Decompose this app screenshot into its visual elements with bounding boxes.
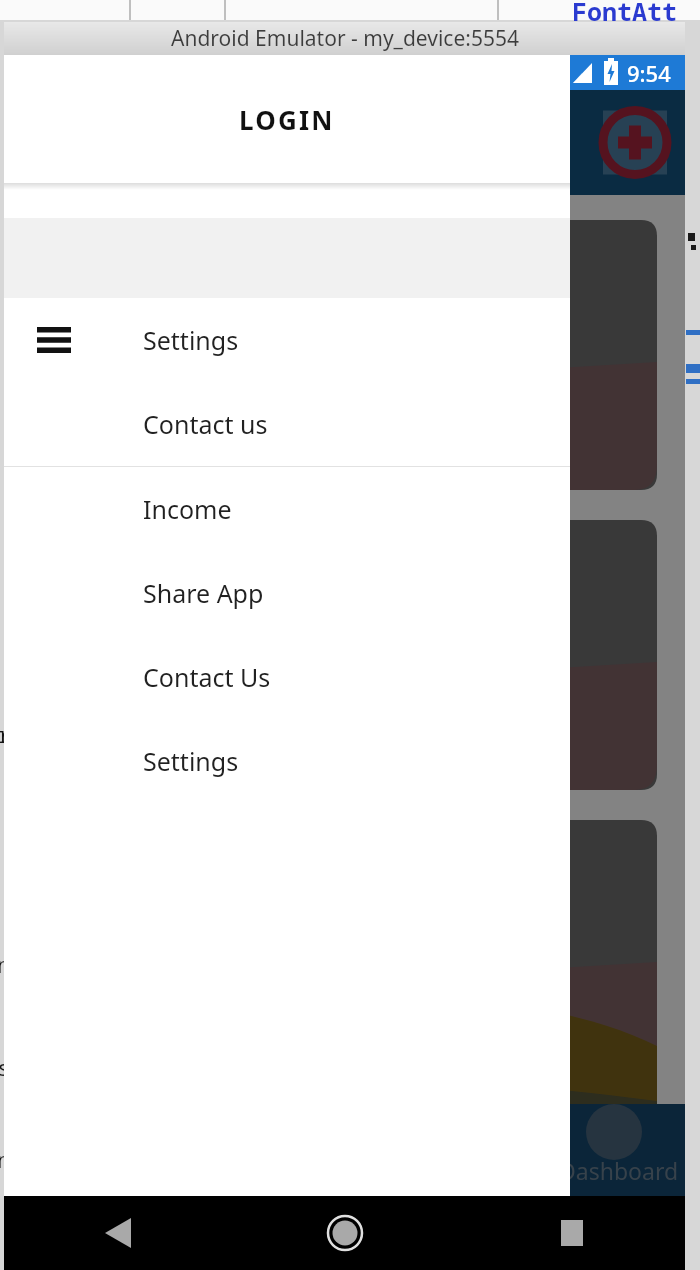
- button[interactable]: Share App: [4, 551, 570, 635]
- staticText: Settings: [143, 744, 239, 778]
- staticText: 9:54: [627, 58, 671, 88]
- staticText: Share App: [143, 576, 264, 610]
- button[interactable]: Home: [231, 1196, 458, 1270]
- staticText: n: [0, 1144, 11, 1174]
- button[interactable]: Income: [4, 467, 570, 551]
- button[interactable]: Settings: [4, 719, 570, 803]
- staticText: s: [0, 1052, 11, 1082]
- button[interactable]: LOGIN: [4, 56, 570, 183]
- staticText: Android Emulator - my_device:5554: [171, 24, 519, 53]
- button[interactable]: Open menu: [4, 298, 570, 382]
- button[interactable]: Contact us: [4, 382, 570, 466]
- staticText: FontAtt: [572, 0, 678, 28]
- staticText: Income: [143, 492, 232, 526]
- staticText: Contact us: [143, 407, 268, 441]
- staticText: Settings: [143, 323, 239, 357]
- staticText: Dashboard: [559, 1155, 679, 1186]
- staticText: r: [0, 719, 11, 749]
- staticText: Contact Us: [143, 660, 271, 694]
- staticText: n: [0, 949, 11, 979]
- other: Open menu: [4, 298, 143, 382]
- staticText: LOGIN: [239, 102, 335, 137]
- button[interactable]: Recent apps: [458, 1196, 685, 1270]
- button[interactable]: Contact Us: [4, 635, 570, 719]
- button[interactable]: Back: [4, 1196, 231, 1270]
